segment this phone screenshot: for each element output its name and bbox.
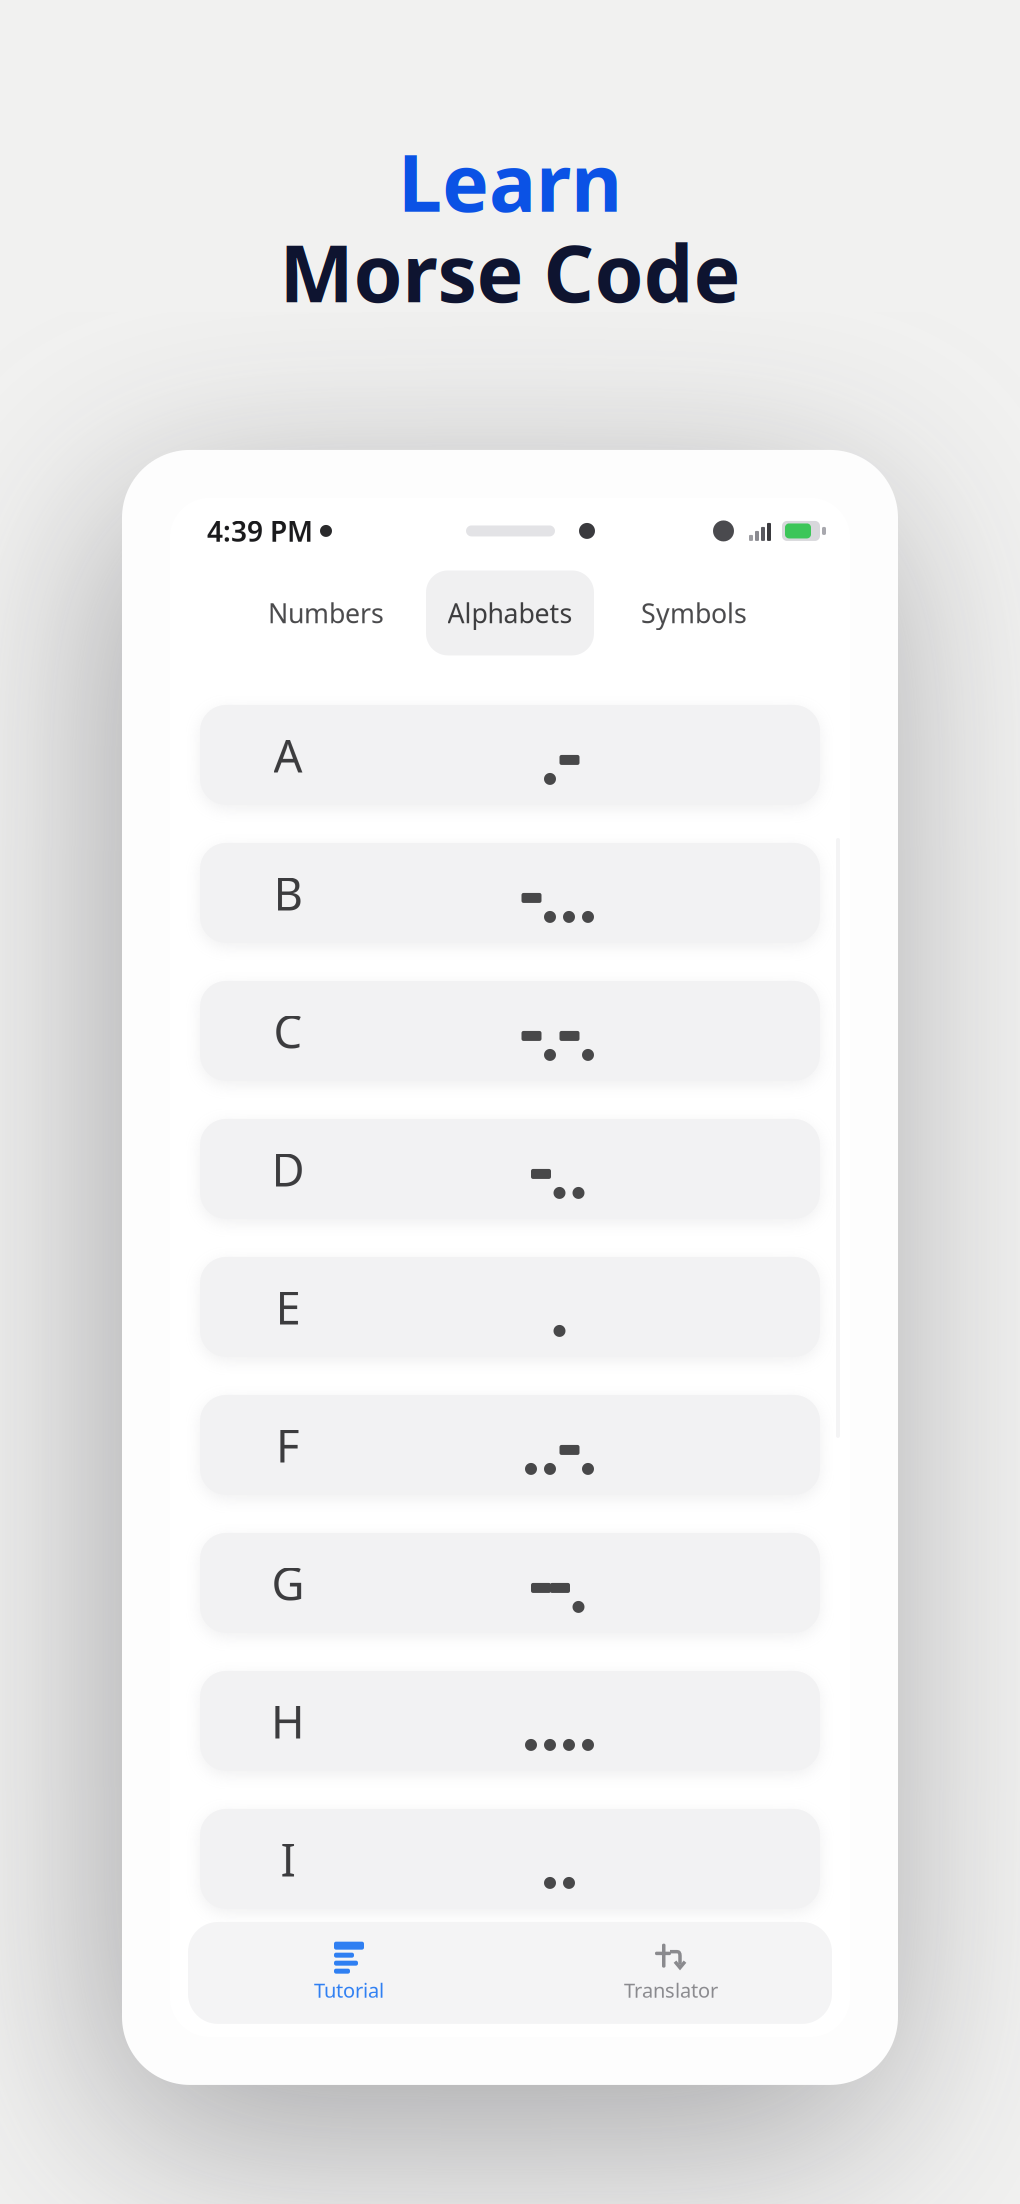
staticText: Tutorial bbox=[314, 1977, 384, 2003]
button[interactable]: G bbox=[200, 1533, 820, 1633]
button[interactable]: I bbox=[200, 1809, 820, 1909]
button[interactable]: E bbox=[200, 1257, 820, 1357]
button[interactable]: B bbox=[200, 843, 820, 943]
button[interactable]: Numbers bbox=[226, 570, 426, 656]
staticText: G bbox=[271, 1553, 304, 1613]
staticText: D bbox=[271, 1139, 304, 1199]
staticText: I bbox=[280, 1829, 295, 1889]
staticText: C bbox=[273, 1001, 302, 1061]
button[interactable]: F bbox=[200, 1395, 820, 1495]
staticText: Alphabets bbox=[447, 595, 572, 631]
button[interactable]: Tutorial bbox=[188, 1922, 510, 2024]
staticText: Numbers bbox=[268, 595, 384, 631]
button[interactable]: Translator bbox=[510, 1922, 832, 2024]
staticText: F bbox=[276, 1415, 300, 1475]
staticText: Symbols bbox=[641, 595, 747, 631]
button[interactable]: H bbox=[200, 1671, 820, 1771]
staticText: 4:39 PM bbox=[207, 512, 313, 549]
button[interactable]: Symbols bbox=[594, 570, 794, 656]
staticText: E bbox=[275, 1277, 300, 1337]
button[interactable]: C bbox=[200, 981, 820, 1081]
staticText: Morse Code bbox=[279, 219, 740, 324]
button[interactable]: D bbox=[200, 1119, 820, 1219]
button[interactable]: Alphabets bbox=[426, 570, 594, 655]
button[interactable]: A bbox=[200, 705, 820, 805]
staticText: Learn bbox=[398, 129, 622, 233]
staticText: A bbox=[273, 725, 302, 785]
staticText: B bbox=[273, 863, 302, 923]
staticText: Translator bbox=[624, 1977, 718, 2003]
staticText: H bbox=[271, 1691, 305, 1751]
